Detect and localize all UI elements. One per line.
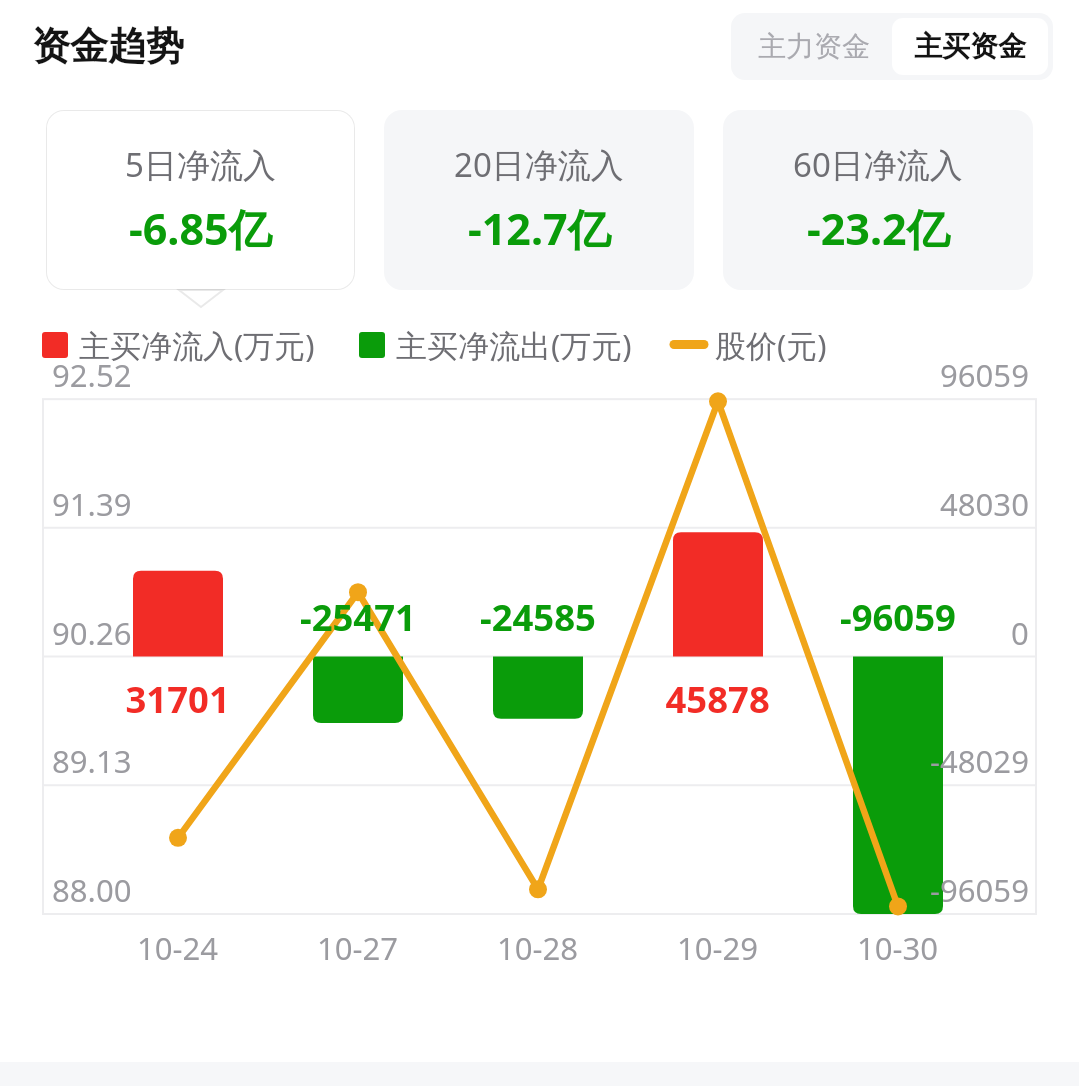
staticText: 主买资金 [914,29,1026,64]
staticText: 20日净流入 [454,142,624,187]
button[interactable]: 主买资金 [892,18,1048,75]
staticText: 主力资金 [758,29,870,64]
button[interactable]: 60日净流入 [723,110,1033,290]
button[interactable]: 主力资金 [736,18,892,75]
staticText: 60日净流入 [793,142,963,187]
staticText: 股价(元) [715,324,827,366]
staticText: 资金趋势 [32,22,184,70]
staticText: 主买净流出(万元) [396,324,632,366]
staticText: 5日净流入 [125,142,276,187]
staticText: -23.2亿 [807,199,950,258]
staticText: -6.85亿 [129,199,272,258]
button[interactable] [0,382,1079,1062]
button[interactable]: 5日净流入 [46,110,355,307]
staticText: -12.7亿 [468,199,611,258]
staticText: 主买净流入(万元) [79,324,315,366]
button[interactable]: 20日净流入 [384,110,694,290]
